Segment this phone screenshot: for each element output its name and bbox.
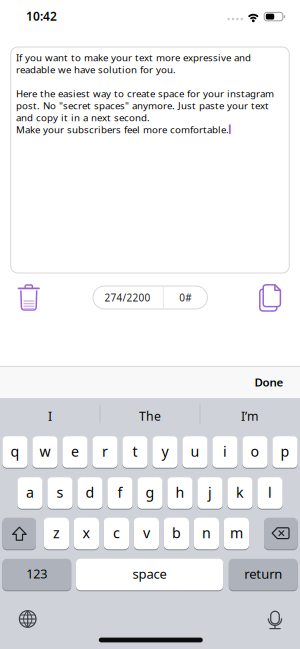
staticText: q [10, 442, 19, 461]
button[interactable]: a [17, 477, 43, 509]
button[interactable]: g [137, 477, 163, 509]
staticText: o [250, 442, 259, 461]
button[interactable]: f [107, 477, 133, 509]
staticText: Done [254, 374, 283, 390]
button[interactable] [264, 517, 298, 550]
staticText: w [39, 442, 50, 461]
staticText: 10:42 [26, 8, 57, 24]
staticText: The [139, 408, 161, 424]
staticText: I [48, 408, 52, 424]
button[interactable]: i [212, 436, 238, 468]
button[interactable]: I [2, 401, 98, 431]
staticText: readable we have solution for you. [16, 63, 176, 76]
staticText: I’m [241, 408, 259, 424]
button[interactable]: z [44, 517, 69, 550]
button[interactable]: o [242, 436, 268, 468]
staticText: 274/2200 [104, 291, 150, 304]
button[interactable]: d [77, 477, 103, 509]
button[interactable]: u [182, 436, 208, 468]
staticText: If you want to make your text more expre… [16, 51, 251, 64]
staticText: and copy it in a next second. [16, 111, 150, 124]
button[interactable]: l [257, 477, 283, 509]
staticText: r [102, 442, 108, 461]
staticText: i [223, 442, 227, 461]
button[interactable] [0, 0, 300, 649]
staticText: a [26, 483, 34, 502]
staticText: u [190, 442, 199, 461]
button[interactable]: return [229, 558, 298, 591]
staticText: n [202, 523, 211, 542]
staticText: l [268, 483, 272, 502]
staticText: j [208, 483, 212, 502]
button[interactable] [0, 0, 300, 649]
button[interactable]: b [164, 517, 189, 550]
staticText: z [53, 523, 60, 542]
button[interactable]: The [102, 401, 198, 431]
button[interactable]: r [92, 436, 118, 468]
staticText: d [85, 483, 94, 502]
button[interactable]: e [62, 436, 88, 468]
staticText: m [230, 523, 243, 542]
staticText: post. No "secret spaces" anymore. Just p… [16, 99, 269, 112]
staticText: g [145, 483, 154, 502]
button[interactable]: s [47, 477, 73, 509]
button[interactable]: w [32, 436, 58, 468]
button[interactable]: q [2, 436, 28, 468]
button[interactable] [0, 0, 300, 649]
button[interactable]: m [224, 517, 249, 550]
button[interactable] [0, 0, 300, 649]
staticText: p [280, 442, 289, 461]
button[interactable]: y [152, 436, 178, 468]
button[interactable]: 123 [2, 558, 71, 591]
button[interactable]: h [167, 477, 193, 509]
button[interactable] [2, 517, 36, 550]
button[interactable]: I’m [202, 401, 298, 431]
button[interactable]: Done [239, 366, 299, 397]
button[interactable]: t [122, 436, 148, 468]
button[interactable]: k [227, 477, 253, 509]
staticText: k [236, 483, 244, 502]
button[interactable]: p [272, 436, 298, 468]
button[interactable]: c [104, 517, 129, 550]
staticText: 0# [179, 291, 191, 304]
staticText: y [161, 442, 168, 461]
staticText: h [175, 483, 184, 502]
button[interactable]: x [74, 517, 99, 550]
staticText: x [82, 523, 90, 542]
staticText: c [113, 523, 120, 542]
staticText: Make your subscribers feel more comforta… [16, 123, 229, 136]
staticText: b [172, 523, 181, 542]
button[interactable]: space [76, 558, 223, 591]
staticText: s [56, 483, 63, 502]
staticText: space [133, 565, 167, 582]
button[interactable]: j [197, 477, 223, 509]
staticText: 123 [26, 565, 47, 582]
staticText: v [143, 523, 150, 542]
button[interactable]: v [134, 517, 159, 550]
staticText: return [244, 565, 282, 582]
staticText: t [132, 442, 137, 461]
button[interactable]: n [194, 517, 219, 550]
staticText: e [71, 442, 79, 461]
staticText: Here the easiest way to create space for… [16, 87, 274, 100]
staticText: f [117, 483, 122, 502]
